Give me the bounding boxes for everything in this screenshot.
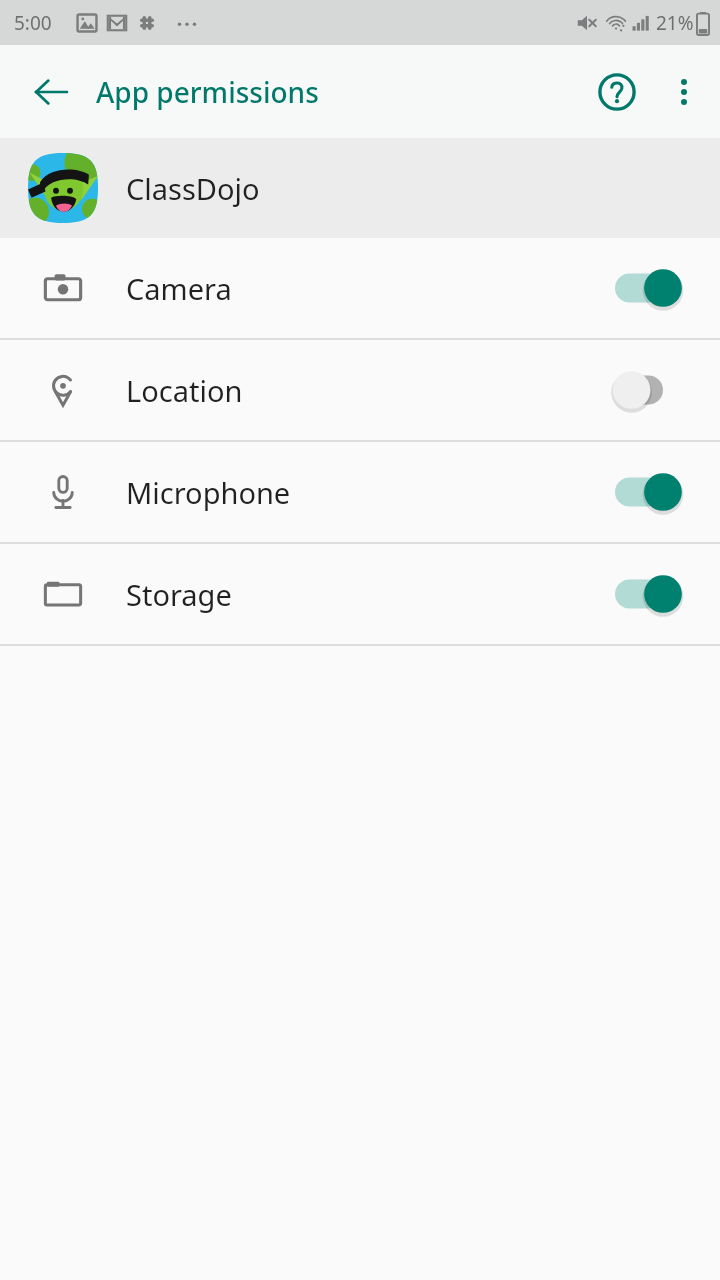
button[interactable]: ClassDojo: [0, 138, 720, 238]
button[interactable]: Help: [582, 57, 652, 127]
staticText: Microphone: [126, 473, 608, 512]
button[interactable]: Microphone: [0, 442, 720, 542]
staticText: Storage: [126, 575, 608, 614]
staticText: 21%: [656, 10, 694, 36]
button[interactable]: Camera: [0, 238, 720, 338]
button[interactable]: Location: [0, 340, 720, 440]
button[interactable]: Storage: [0, 544, 720, 644]
staticText: Location: [126, 371, 608, 410]
staticText: App permissions: [96, 73, 319, 111]
staticText: Camera: [126, 269, 608, 308]
staticText: 5:00: [14, 10, 52, 36]
button[interactable]: Back: [15, 56, 87, 128]
button[interactable]: More options: [652, 60, 716, 124]
staticText: ClassDojo: [126, 169, 260, 208]
